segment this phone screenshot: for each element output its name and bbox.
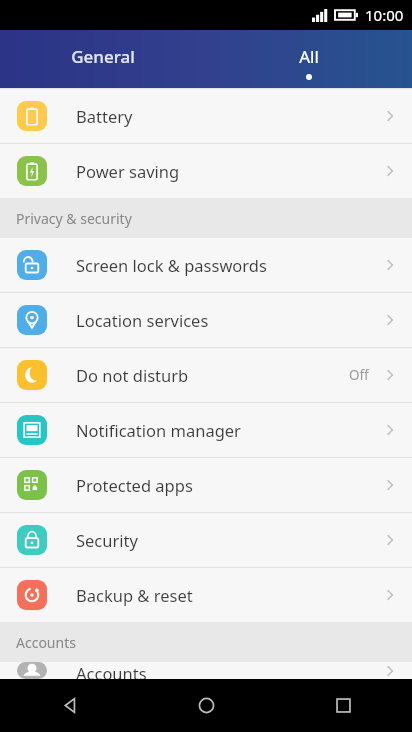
button[interactable]: Battery [0,89,412,143]
button[interactable]: Do not disturb [0,348,412,402]
button[interactable]: General [0,30,206,88]
staticText: General [71,45,135,68]
staticText: Privacy & security [16,209,132,228]
button[interactable]: Recent apps [275,679,412,732]
button[interactable]: Back [0,679,138,732]
staticText: Accounts [76,662,382,679]
button[interactable]: Protected apps [0,458,412,512]
button[interactable]: Notification manager [0,403,412,457]
button[interactable]: Backup & reset [0,568,412,622]
button[interactable]: Screen lock & passwords [0,238,412,292]
staticText: Power saving [76,160,382,182]
staticText: 10:00 [365,5,404,25]
button[interactable]: Security [0,513,412,567]
button[interactable]: All [206,30,412,88]
button[interactable]: Power saving [0,144,412,198]
staticText: Location services [76,309,382,331]
staticText: Protected apps [76,474,382,496]
staticText: Battery [76,105,382,127]
staticText: Do not disturb [76,364,349,386]
staticText: Notification manager [76,419,382,441]
staticText: All [299,45,319,68]
staticText: Accounts [16,633,76,652]
staticText: Screen lock & passwords [76,254,382,276]
button[interactable]: Location services [0,293,412,347]
button[interactable]: Accounts [0,662,412,679]
staticText: Security [76,529,382,551]
staticText: Backup & reset [76,584,382,606]
button[interactable]: Home [138,679,275,732]
staticText: Off [349,366,369,384]
